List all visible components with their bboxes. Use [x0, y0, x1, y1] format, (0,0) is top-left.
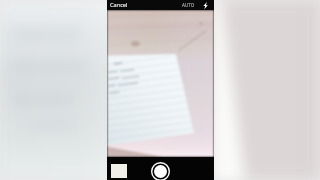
- button[interactable]: Flash: [201, 1, 210, 10]
- button[interactable]: Shutter: [151, 162, 170, 180]
- button[interactable]: AUTO: [182, 2, 195, 8]
- button[interactable]: Cancel: [110, 1, 128, 9]
